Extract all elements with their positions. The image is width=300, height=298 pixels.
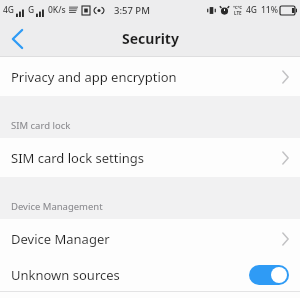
staticText: 4G bbox=[3, 4, 15, 16]
button[interactable]: Back bbox=[0, 22, 34, 56]
button[interactable]: Privacy and app encryption bbox=[0, 57, 300, 96]
staticText: LTE bbox=[234, 10, 242, 16]
staticText: Security bbox=[122, 29, 179, 48]
button[interactable]: Device Manager bbox=[0, 219, 300, 258]
button[interactable]: SIM card lock settings bbox=[0, 138, 300, 177]
staticText: Unknown sources bbox=[11, 266, 249, 284]
staticText: SIM card lock settings bbox=[11, 149, 282, 167]
staticText: G bbox=[28, 4, 35, 16]
staticText: Privacy and app encryption bbox=[11, 68, 282, 86]
staticText: 0K/s bbox=[48, 4, 66, 16]
staticText: ℃℃ bbox=[233, 4, 243, 10]
staticText: Device Manager bbox=[11, 230, 282, 248]
staticText: 4G bbox=[246, 4, 258, 16]
button[interactable]: Unknown sources bbox=[0, 258, 300, 291]
staticText: SIM card lock bbox=[11, 119, 71, 132]
staticText: 3:57 PM bbox=[114, 4, 150, 17]
staticText: Device Management bbox=[11, 200, 103, 213]
staticText: 11% bbox=[261, 4, 278, 16]
